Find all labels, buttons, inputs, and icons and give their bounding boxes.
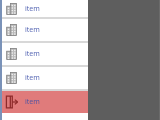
other: Building	[5, 47, 19, 61]
staticText: item	[25, 73, 40, 83]
other: Building	[5, 2, 19, 16]
staticText: item	[25, 25, 40, 35]
other: Building	[5, 71, 19, 85]
staticText: item	[25, 49, 40, 59]
button[interactable]: Exit	[0, 91, 88, 113]
button[interactable]: Building	[0, 67, 88, 89]
other: Building	[5, 23, 19, 37]
button[interactable]: Building	[0, 19, 88, 41]
other: Exit	[5, 95, 19, 109]
staticText: item	[25, 97, 40, 107]
button[interactable]: Building	[0, 0, 88, 17]
staticText: item	[25, 4, 40, 14]
button[interactable]: Building	[0, 43, 88, 65]
